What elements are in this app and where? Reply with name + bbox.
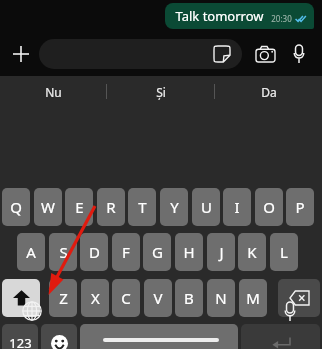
staticText: X <box>91 288 100 308</box>
button[interactable]: Da <box>215 76 322 107</box>
staticText: 123 <box>9 334 32 349</box>
button[interactable]: I <box>223 188 251 226</box>
button[interactable]: B <box>175 279 203 317</box>
button[interactable]: 123 <box>2 324 38 349</box>
button[interactable]: Backspace <box>278 279 320 317</box>
button[interactable]: V <box>144 279 172 317</box>
button[interactable]: H <box>175 233 203 271</box>
button[interactable]: Space <box>80 324 238 349</box>
staticText: L <box>280 242 288 262</box>
button[interactable]: W <box>34 188 62 226</box>
button[interactable]: G <box>143 233 171 271</box>
staticText: P <box>295 197 305 217</box>
staticText: N <box>215 288 227 308</box>
staticText: Da <box>261 84 277 100</box>
button[interactable]: Și <box>107 76 214 107</box>
staticText: M <box>246 288 260 308</box>
button[interactable]: T <box>128 188 156 226</box>
button[interactable]: Z <box>49 279 77 317</box>
staticText: V <box>153 288 163 308</box>
staticText: 20:30 <box>271 13 292 24</box>
button[interactable]: Q <box>2 188 30 226</box>
staticText: J <box>219 242 224 262</box>
button[interactable]: A <box>17 233 45 271</box>
button[interactable]: K <box>238 233 266 271</box>
staticText: E <box>75 197 84 217</box>
staticText: A <box>26 242 36 262</box>
button[interactable]: L <box>270 233 298 271</box>
staticText: Z <box>59 288 68 308</box>
button[interactable]: Shift <box>2 279 40 317</box>
button[interactable]: R <box>97 188 125 226</box>
button[interactable]: Attach <box>4 37 38 71</box>
button[interactable]: Camera <box>250 39 280 69</box>
button[interactable]: Stickers <box>39 39 242 69</box>
staticText: R <box>106 197 116 217</box>
button[interactable]: Voice input <box>275 296 305 326</box>
button[interactable]: O <box>255 188 283 226</box>
staticText: W <box>41 197 55 217</box>
staticText: F <box>122 242 130 262</box>
button[interactable]: U <box>192 188 220 226</box>
staticText: Nu <box>45 84 62 100</box>
staticText: U <box>201 197 212 217</box>
button[interactable]: P <box>286 188 314 226</box>
staticText: Q <box>10 197 22 217</box>
staticText: G <box>152 242 163 262</box>
button[interactable]: Voice message <box>284 39 314 69</box>
staticText: C <box>121 288 131 308</box>
staticText: H <box>183 242 195 262</box>
button[interactable]: Stickers <box>212 44 232 64</box>
button[interactable]: S <box>49 233 77 271</box>
button[interactable]: Nu <box>0 76 106 107</box>
staticText: O <box>263 197 275 217</box>
staticText: I <box>234 197 240 217</box>
staticText: Y <box>170 197 179 217</box>
button[interactable]: N <box>207 279 235 317</box>
button[interactable]: Emoji <box>41 324 77 349</box>
button[interactable]: D <box>80 233 108 271</box>
button[interactable]: F <box>112 233 140 271</box>
staticText: Și <box>156 84 166 100</box>
staticText: B <box>184 288 194 308</box>
button[interactable]: E <box>65 188 93 226</box>
staticText: Talk tomorrow <box>175 7 264 25</box>
staticText: T <box>138 197 147 217</box>
button[interactable]: C <box>112 279 140 317</box>
button[interactable]: Talk tomorrow <box>165 3 314 29</box>
staticText: D <box>89 242 100 262</box>
button[interactable]: Enter <box>241 324 320 349</box>
button[interactable]: M <box>239 279 267 317</box>
staticText: S <box>59 242 68 262</box>
staticText: K <box>247 242 257 262</box>
button[interactable]: X <box>81 279 109 317</box>
button[interactable]: Y <box>160 188 188 226</box>
button[interactable]: J <box>207 233 235 271</box>
button[interactable]: Change language <box>17 296 47 326</box>
